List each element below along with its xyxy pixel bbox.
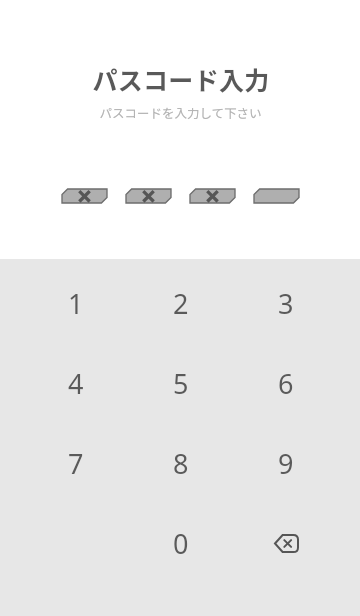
staticText: 7 <box>68 445 84 482</box>
staticText: 5 <box>173 365 189 402</box>
staticText: 8 <box>173 445 189 482</box>
button[interactable]: 7 <box>24 423 128 503</box>
button[interactable]: 2 <box>128 263 233 343</box>
button[interactable]: 9 <box>233 423 338 503</box>
staticText: 3 <box>278 285 294 322</box>
staticText: パスコードを入力して下さい <box>99 103 262 121</box>
staticText: 6 <box>278 365 294 402</box>
button[interactable]: 4 <box>24 343 128 423</box>
staticText: 0 <box>173 525 189 562</box>
staticText: 9 <box>278 445 294 482</box>
button[interactable]: 8 <box>128 423 233 503</box>
button[interactable]: 3 <box>233 263 338 343</box>
staticText: パスコード入力 <box>92 61 270 97</box>
button[interactable]: 0 <box>128 503 233 583</box>
staticText: 4 <box>68 365 84 402</box>
staticText: 1 <box>68 285 84 322</box>
staticText: 2 <box>173 285 189 322</box>
button[interactable]: Backspace <box>233 503 338 583</box>
button[interactable]: 6 <box>233 343 338 423</box>
button[interactable]: 1 <box>24 263 128 343</box>
button[interactable]: 5 <box>128 343 233 423</box>
other: Backspace <box>275 535 298 552</box>
